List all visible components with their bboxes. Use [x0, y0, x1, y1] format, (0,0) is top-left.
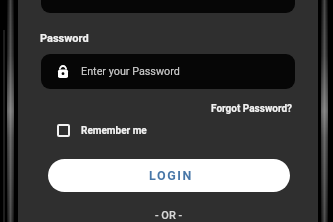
button[interactable]: Remember me: [57, 124, 147, 137]
staticText: LOGIN: [149, 168, 194, 183]
staticText: Enter your Password: [81, 65, 180, 78]
button[interactable]: Enter your Password: [41, 54, 295, 89]
button[interactable]: [41, 0, 295, 13]
staticText: - OR -: [155, 209, 183, 222]
staticText: Remember me: [81, 125, 147, 137]
button[interactable]: LOGIN: [48, 159, 290, 192]
staticText: Password: [40, 32, 89, 45]
button[interactable]: Forgot Password?: [211, 103, 293, 115]
